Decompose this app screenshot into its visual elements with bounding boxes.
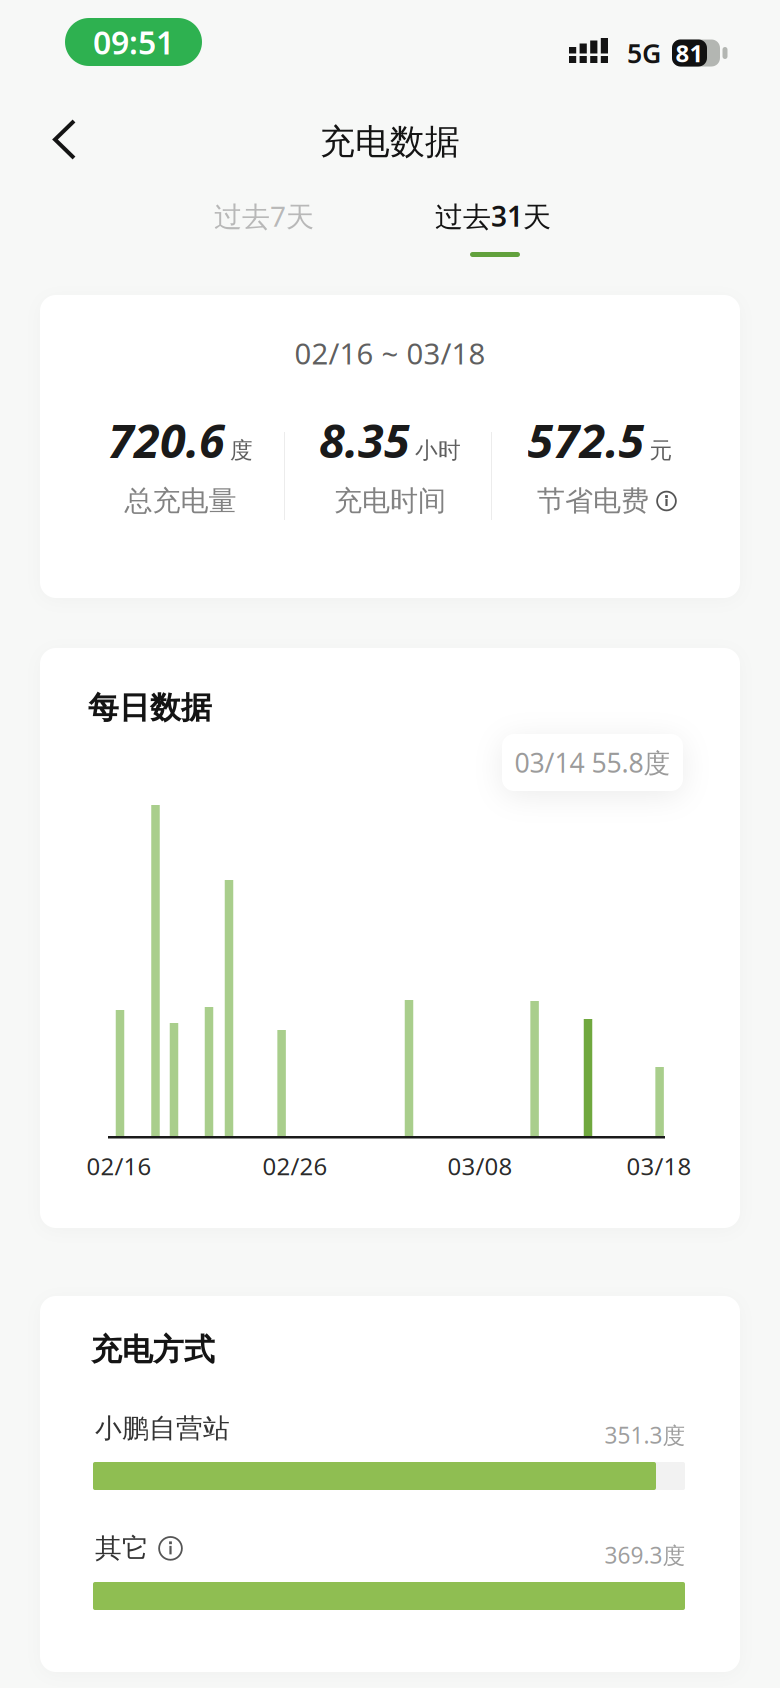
staticText: 充电数据 <box>320 121 460 163</box>
staticText: 其它 <box>95 1532 149 1565</box>
button[interactable]: Back <box>48 118 92 162</box>
staticText: 充电方式 <box>91 1331 215 1369</box>
staticText: 节省电费 <box>537 484 649 518</box>
staticText: 02/26 <box>262 1150 327 1182</box>
staticText: 02/16 ~ 03/18 <box>294 333 485 372</box>
staticText: 03/08 <box>447 1150 512 1182</box>
button[interactable]: 其它充电说明 <box>158 1536 183 1561</box>
button[interactable]: 过去7天 <box>174 188 354 244</box>
staticText: 总充电量 <box>124 484 236 518</box>
staticText: 03/18 <box>626 1150 691 1182</box>
staticText: 每日数据 <box>88 689 212 727</box>
staticText: 8.35 <box>319 409 410 471</box>
button[interactable]: 过去31天 <box>403 188 583 244</box>
button[interactable]: 节省电费说明 <box>656 490 677 511</box>
staticText: 09:51 <box>93 21 174 63</box>
staticText: 351.3度 <box>604 1420 685 1450</box>
staticText: 过去7天 <box>214 197 314 235</box>
staticText: 02/16 <box>86 1150 151 1182</box>
staticText: 度 <box>230 437 253 464</box>
staticText: 元 <box>649 437 672 464</box>
staticText: 过去31天 <box>435 197 551 235</box>
staticText: 03/14 55.8度 <box>514 745 670 780</box>
staticText: 720.6 <box>108 409 225 471</box>
staticText: 572.5 <box>527 409 644 471</box>
staticText: 369.3度 <box>604 1540 685 1570</box>
staticText: 5G <box>627 35 661 71</box>
staticText: 小时 <box>415 437 461 464</box>
staticText: 81 <box>675 37 703 69</box>
staticText: 小鹏自营站 <box>95 1412 230 1445</box>
staticText: 充电时间 <box>334 484 446 518</box>
